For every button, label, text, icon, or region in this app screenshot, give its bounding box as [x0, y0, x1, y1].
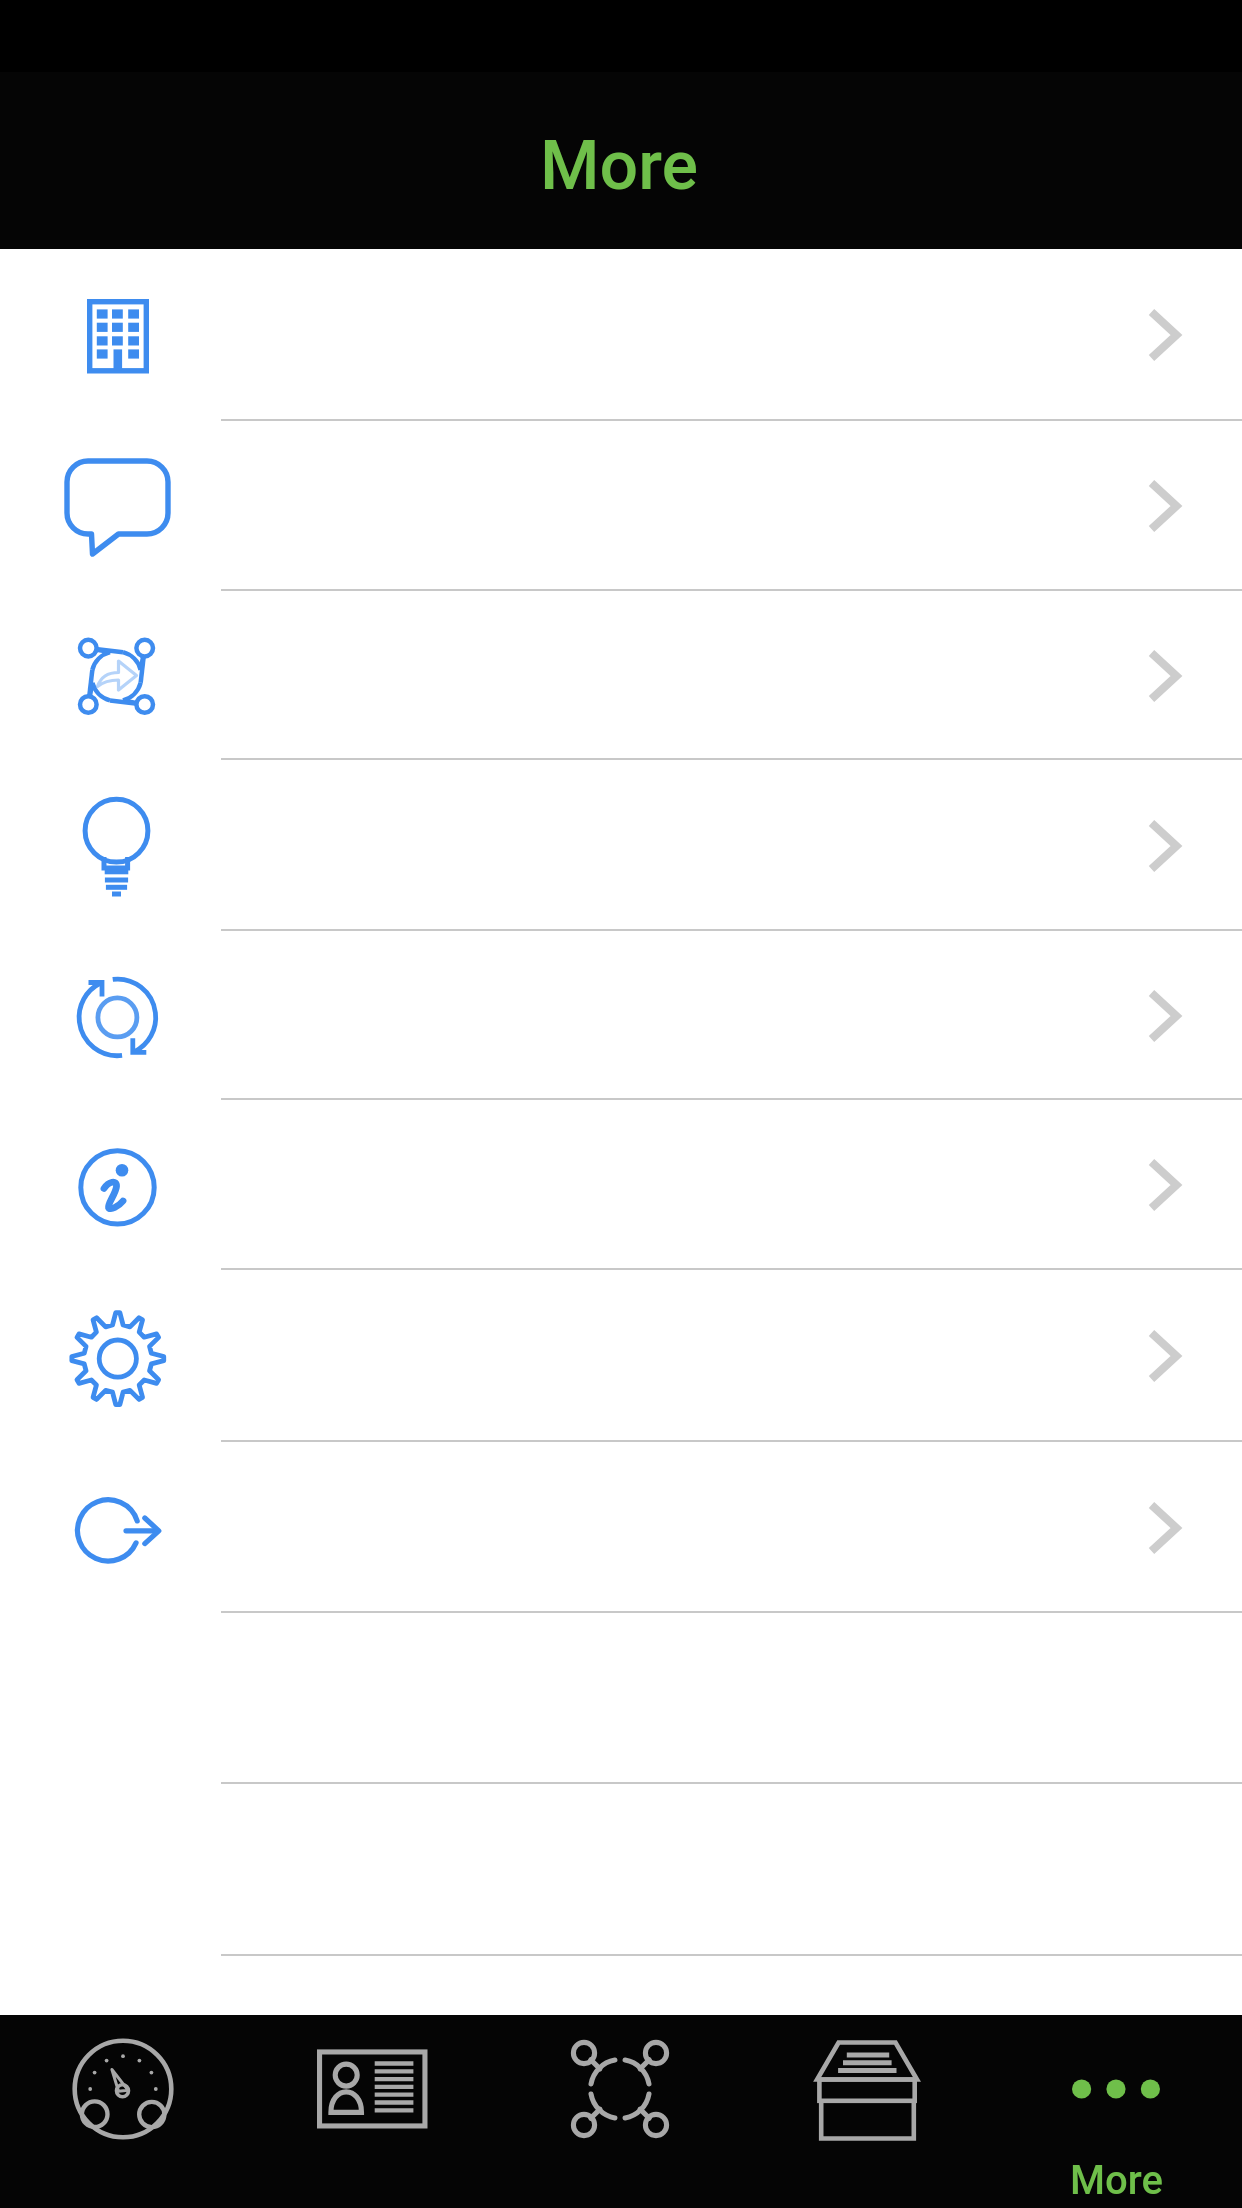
button[interactable]: Log out: [0, 1442, 1242, 1613]
button[interactable]: Messages: [0, 421, 1242, 591]
button[interactable]: Sync: [0, 931, 1242, 1100]
button[interactable]: More: [994, 2015, 1242, 2208]
button[interactable]: Company: [0, 249, 1242, 421]
button[interactable]: Settings: [0, 1270, 1242, 1442]
staticText: More: [540, 126, 699, 206]
button[interactable]: Ideas: [0, 760, 1242, 931]
button[interactable]: Network: [498, 2015, 746, 2208]
button[interactable]: Inbox: [746, 2015, 994, 2208]
staticText: More: [1070, 2157, 1163, 2204]
button[interactable]: Share network: [0, 591, 1242, 760]
button[interactable]: About: [0, 1100, 1242, 1270]
button[interactable]: Dashboard: [0, 2015, 249, 2208]
button[interactable]: Contacts: [249, 2015, 498, 2208]
